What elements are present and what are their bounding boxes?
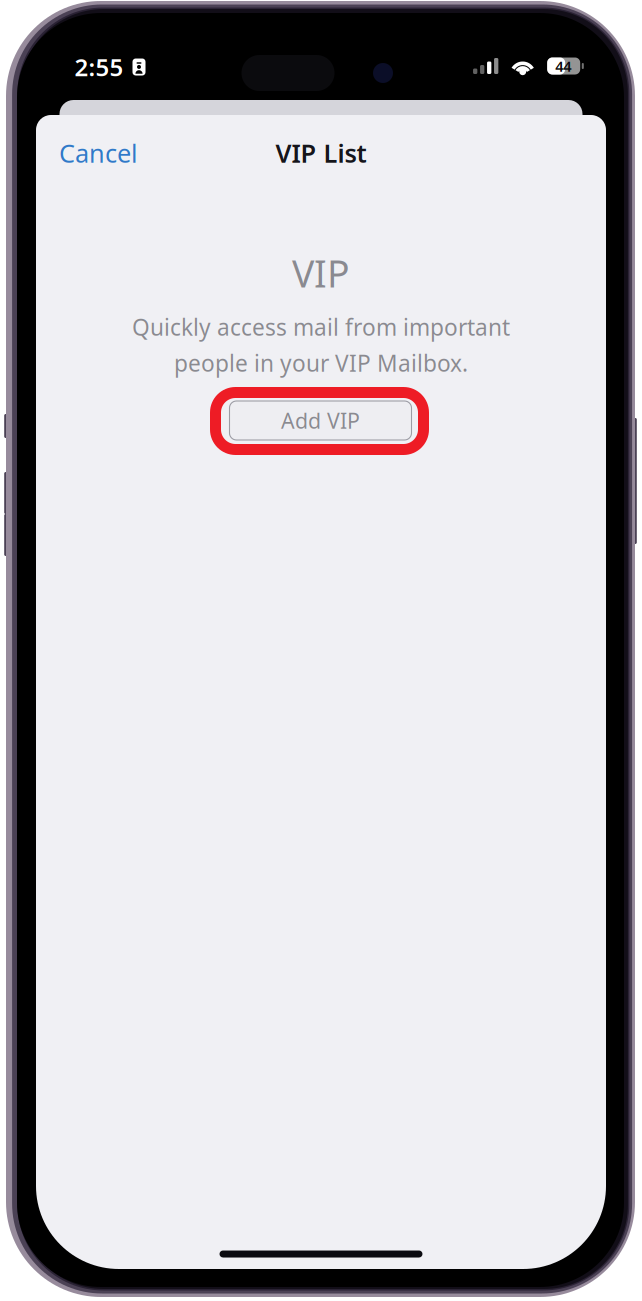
staticText: people in your VIP Mailbox. [174,348,468,378]
staticText: VIP [292,248,350,298]
button[interactable]: Add VIP [229,401,411,440]
staticText: 2:55 [74,51,123,83]
staticText: Add VIP [281,406,360,435]
staticText: Quickly access mail from important [132,312,510,342]
staticText: Cancel [59,136,138,170]
staticText: 44 [555,56,571,76]
staticText: VIP List [275,136,366,170]
button[interactable]: Cancel [48,126,149,180]
